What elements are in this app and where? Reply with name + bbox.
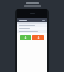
button[interactable] xyxy=(17,24,47,27)
button[interactable]: Decline xyxy=(32,35,44,40)
button[interactable] xyxy=(17,30,47,33)
button[interactable]: Accept xyxy=(20,35,31,40)
button[interactable] xyxy=(17,27,47,30)
button[interactable]: App bar xyxy=(17,18,47,22)
